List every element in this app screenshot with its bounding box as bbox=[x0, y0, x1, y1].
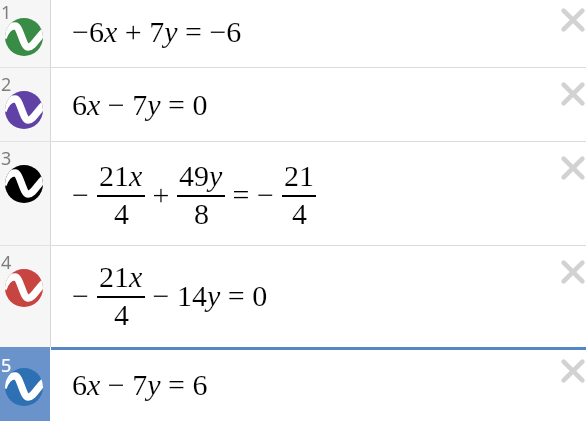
staticText: 4 bbox=[1, 250, 12, 275]
staticText: 3 bbox=[1, 146, 12, 171]
staticText: 1 bbox=[1, 0, 12, 25]
button[interactable]: 1 bbox=[0, 0, 50, 67]
staticText: −6x + 7y = −6 bbox=[72, 15, 242, 48]
button[interactable]: − bbox=[51, 246, 586, 347]
button[interactable] bbox=[561, 359, 585, 383]
staticText: 6x − 7y = 0 bbox=[72, 88, 208, 121]
staticText: 4 bbox=[114, 197, 129, 230]
staticText: + bbox=[145, 178, 177, 211]
staticText: 21x bbox=[99, 260, 143, 293]
staticText: − 14y = 0 bbox=[145, 279, 268, 312]
staticText: 2 bbox=[1, 72, 12, 97]
staticText: = − bbox=[225, 178, 282, 211]
button[interactable] bbox=[561, 8, 585, 32]
button[interactable] bbox=[561, 260, 585, 284]
staticText: 4 bbox=[292, 197, 307, 230]
button[interactable] bbox=[561, 82, 585, 106]
button[interactable]: 3 bbox=[0, 142, 50, 245]
staticText: 6x − 7y = 6 bbox=[72, 368, 208, 401]
button[interactable]: 2 bbox=[0, 68, 50, 141]
button[interactable]: − bbox=[51, 142, 586, 245]
staticText: 4 bbox=[114, 298, 129, 331]
button[interactable]: 6x − 7y = 0 bbox=[51, 68, 586, 141]
staticText: 21 bbox=[284, 159, 314, 192]
button[interactable]: 6x − 7y = 6 bbox=[51, 347, 586, 421]
button[interactable] bbox=[561, 156, 585, 180]
staticText: 8 bbox=[194, 197, 209, 230]
button[interactable]: −6x + 7y = −6 bbox=[51, 0, 586, 67]
staticText: 49y bbox=[179, 159, 223, 192]
staticText: 21x bbox=[99, 159, 143, 192]
staticText: − bbox=[72, 279, 97, 312]
staticText: − bbox=[72, 178, 97, 211]
staticText: 5 bbox=[1, 353, 12, 378]
button[interactable]: 5 bbox=[0, 347, 50, 421]
button[interactable]: 4 bbox=[0, 246, 50, 347]
